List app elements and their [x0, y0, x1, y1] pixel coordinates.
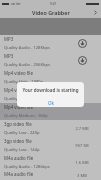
- staticText: MP3: [4, 53, 14, 59]
- button[interactable]: More options: [90, 7, 101, 18]
- button[interactable]: M4a audio file: [0, 171, 101, 180]
- button[interactable]: Mp4 video file: [0, 86, 101, 103]
- button[interactable]: MP3: [0, 35, 101, 52]
- staticText: M4a audio file: [4, 171, 34, 177]
- staticText: 957 KB: [75, 143, 89, 149]
- button[interactable]: 3gp video file: [0, 120, 101, 137]
- staticText: 3gp video file: [4, 121, 32, 127]
- staticText: Ok: [48, 100, 54, 106]
- staticText: carrier: [11, 2, 21, 6]
- staticText: 2.7 MB: [75, 126, 89, 132]
- staticText: Quality Low - 240p: [4, 130, 40, 136]
- staticText: Quality High - 1080p: [4, 79, 44, 85]
- staticText: Quality Low - 144p: [4, 147, 40, 153]
- staticText: Quality Medium - 360p: [4, 113, 48, 119]
- staticText: Mp4 video file: [4, 87, 33, 93]
- staticText: 1.6 MB: [75, 160, 89, 166]
- staticText: Video Grabber: [32, 9, 70, 16]
- staticText: MP3: [4, 36, 14, 42]
- staticText: Quality Audio - 128Kbps: [4, 45, 50, 51]
- staticText: Mp4 video file: [4, 70, 33, 76]
- staticText: Your download is starting: [22, 87, 79, 93]
- button[interactable]: M4a audio file: [0, 154, 101, 171]
- button[interactable]: Mp4 video file: [0, 103, 101, 120]
- staticText: Quality Audio - 256Kbps: [4, 62, 50, 68]
- button[interactable]: Download: [77, 38, 88, 49]
- button[interactable]: Mp4 video file: [0, 69, 101, 86]
- button[interactable]: MP3: [0, 52, 101, 69]
- staticText: 9:41: [50, 2, 57, 6]
- button[interactable]: Ok: [17, 98, 84, 107]
- staticText: M4a audio file: [4, 155, 34, 161]
- staticText: 3gp video file: [4, 138, 32, 144]
- staticText: 3 MB: [77, 173, 87, 179]
- staticText: Mp4 video file: [4, 104, 33, 110]
- staticText: Quality Audio - 128kbps: [4, 164, 50, 170]
- staticText: Quality High - 720p: [4, 96, 41, 102]
- button[interactable]: Download: [77, 55, 88, 66]
- button[interactable]: 3gp video file: [0, 137, 101, 154]
